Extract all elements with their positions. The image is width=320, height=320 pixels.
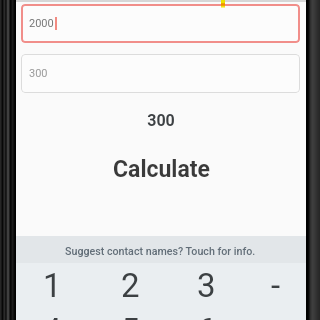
- staticText: Calculate: [113, 156, 210, 183]
- button[interactable]: 2000: [21, 4, 300, 43]
- button[interactable]: 1: [16, 262, 88, 308]
- staticText: 5: [121, 311, 140, 320]
- staticText: 3: [197, 266, 216, 305]
- staticText: Suggest contact names? Touch for info.: [65, 245, 256, 258]
- button[interactable]: 5: [94, 307, 166, 320]
- staticText: 2000: [29, 17, 54, 30]
- button[interactable]: 4: [16, 307, 88, 320]
- staticText: -: [271, 266, 281, 305]
- button[interactable]: Suggest contact names? Touch for info.: [16, 236, 306, 263]
- staticText: 6: [197, 311, 216, 320]
- button[interactable]: 2: [94, 262, 166, 308]
- button[interactable]: 3: [170, 262, 242, 308]
- button[interactable]: Calculate: [16, 156, 306, 183]
- staticText: 300: [29, 67, 48, 80]
- staticText: 4: [43, 311, 62, 320]
- button[interactable]: 300: [21, 54, 300, 93]
- button[interactable]: -: [240, 262, 312, 308]
- staticText: 1: [43, 266, 62, 305]
- staticText: 2: [121, 266, 140, 305]
- button[interactable]: 6: [170, 307, 242, 320]
- staticText: 300: [147, 111, 175, 130]
